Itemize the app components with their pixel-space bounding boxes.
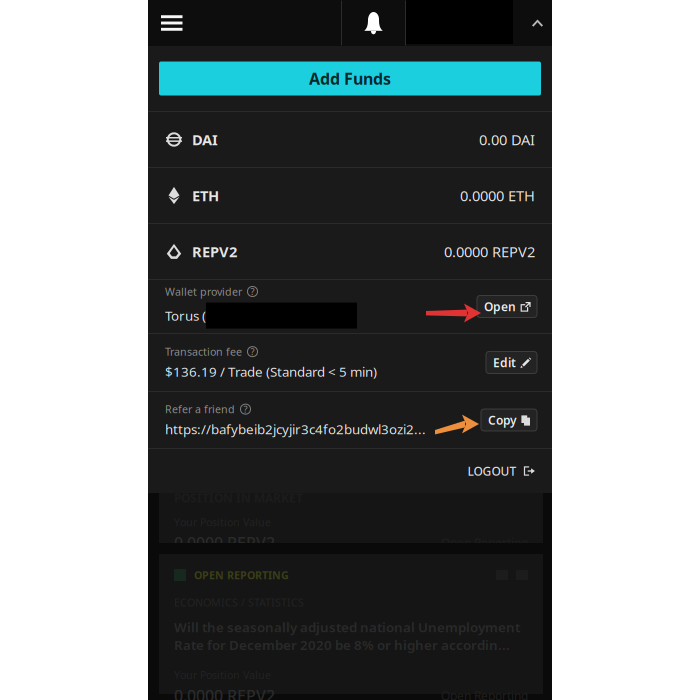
staticText: 0.0000 REPV2 — [444, 242, 535, 261]
button[interactable]: Add Funds — [159, 61, 541, 95]
staticText: https://bafybeib2jcyjir3c4fo2budwl3ozi2.… — [165, 420, 426, 438]
staticText: Will the seasonally adjusted national Un… — [174, 618, 520, 654]
staticText: ? — [243, 403, 247, 415]
button[interactable]: ETH — [148, 168, 552, 223]
staticText: Your Position Value — [174, 668, 271, 682]
button[interactable]: Copy — [481, 409, 537, 431]
staticText: $136.19 / Trade (Standard < 5 min) — [165, 363, 377, 380]
staticText: Torus ( — [165, 307, 206, 324]
button[interactable]: DAI — [148, 112, 552, 167]
button[interactable]: LOGOUT — [465, 456, 537, 486]
button[interactable]: Notifications — [342, 0, 405, 46]
staticText: Wallet provider — [165, 284, 242, 299]
staticText: 0.0000 REPV2 — [174, 532, 275, 553]
staticText: 0.0000 REPV2 — [174, 685, 275, 700]
button[interactable]: Open — [477, 295, 537, 317]
staticText: ECONOMICS / STATISTICS — [174, 595, 304, 609]
staticText: Edit — [493, 354, 516, 370]
button[interactable]: Edit — [486, 351, 537, 373]
button[interactable]: Menu — [148, 0, 341, 46]
staticText: LOGOUT — [467, 463, 516, 479]
staticText: Refer a friend — [165, 402, 235, 416]
staticText: DAI — [192, 130, 218, 149]
staticText: ? — [250, 285, 254, 298]
button[interactable]: REPV2 — [148, 224, 552, 279]
staticText: Open Reporting — [441, 688, 528, 700]
staticText: ETH — [192, 186, 219, 205]
staticText: ? — [250, 345, 254, 358]
staticText: Open Reporting — [441, 535, 528, 551]
staticText: REPV2 — [192, 242, 237, 261]
staticText: OPEN REPORTING — [194, 568, 289, 582]
staticText: Transaction fee — [165, 345, 242, 359]
staticText: 0.0000 ETH — [460, 186, 535, 205]
staticText: Add Funds — [309, 68, 391, 89]
staticText: Copy — [488, 412, 517, 428]
staticText: Your Position Value — [174, 515, 271, 529]
staticText: 0.00 DAI — [479, 130, 535, 149]
staticText: Open — [484, 298, 516, 314]
button[interactable]: Collapse panel — [513, 0, 552, 46]
